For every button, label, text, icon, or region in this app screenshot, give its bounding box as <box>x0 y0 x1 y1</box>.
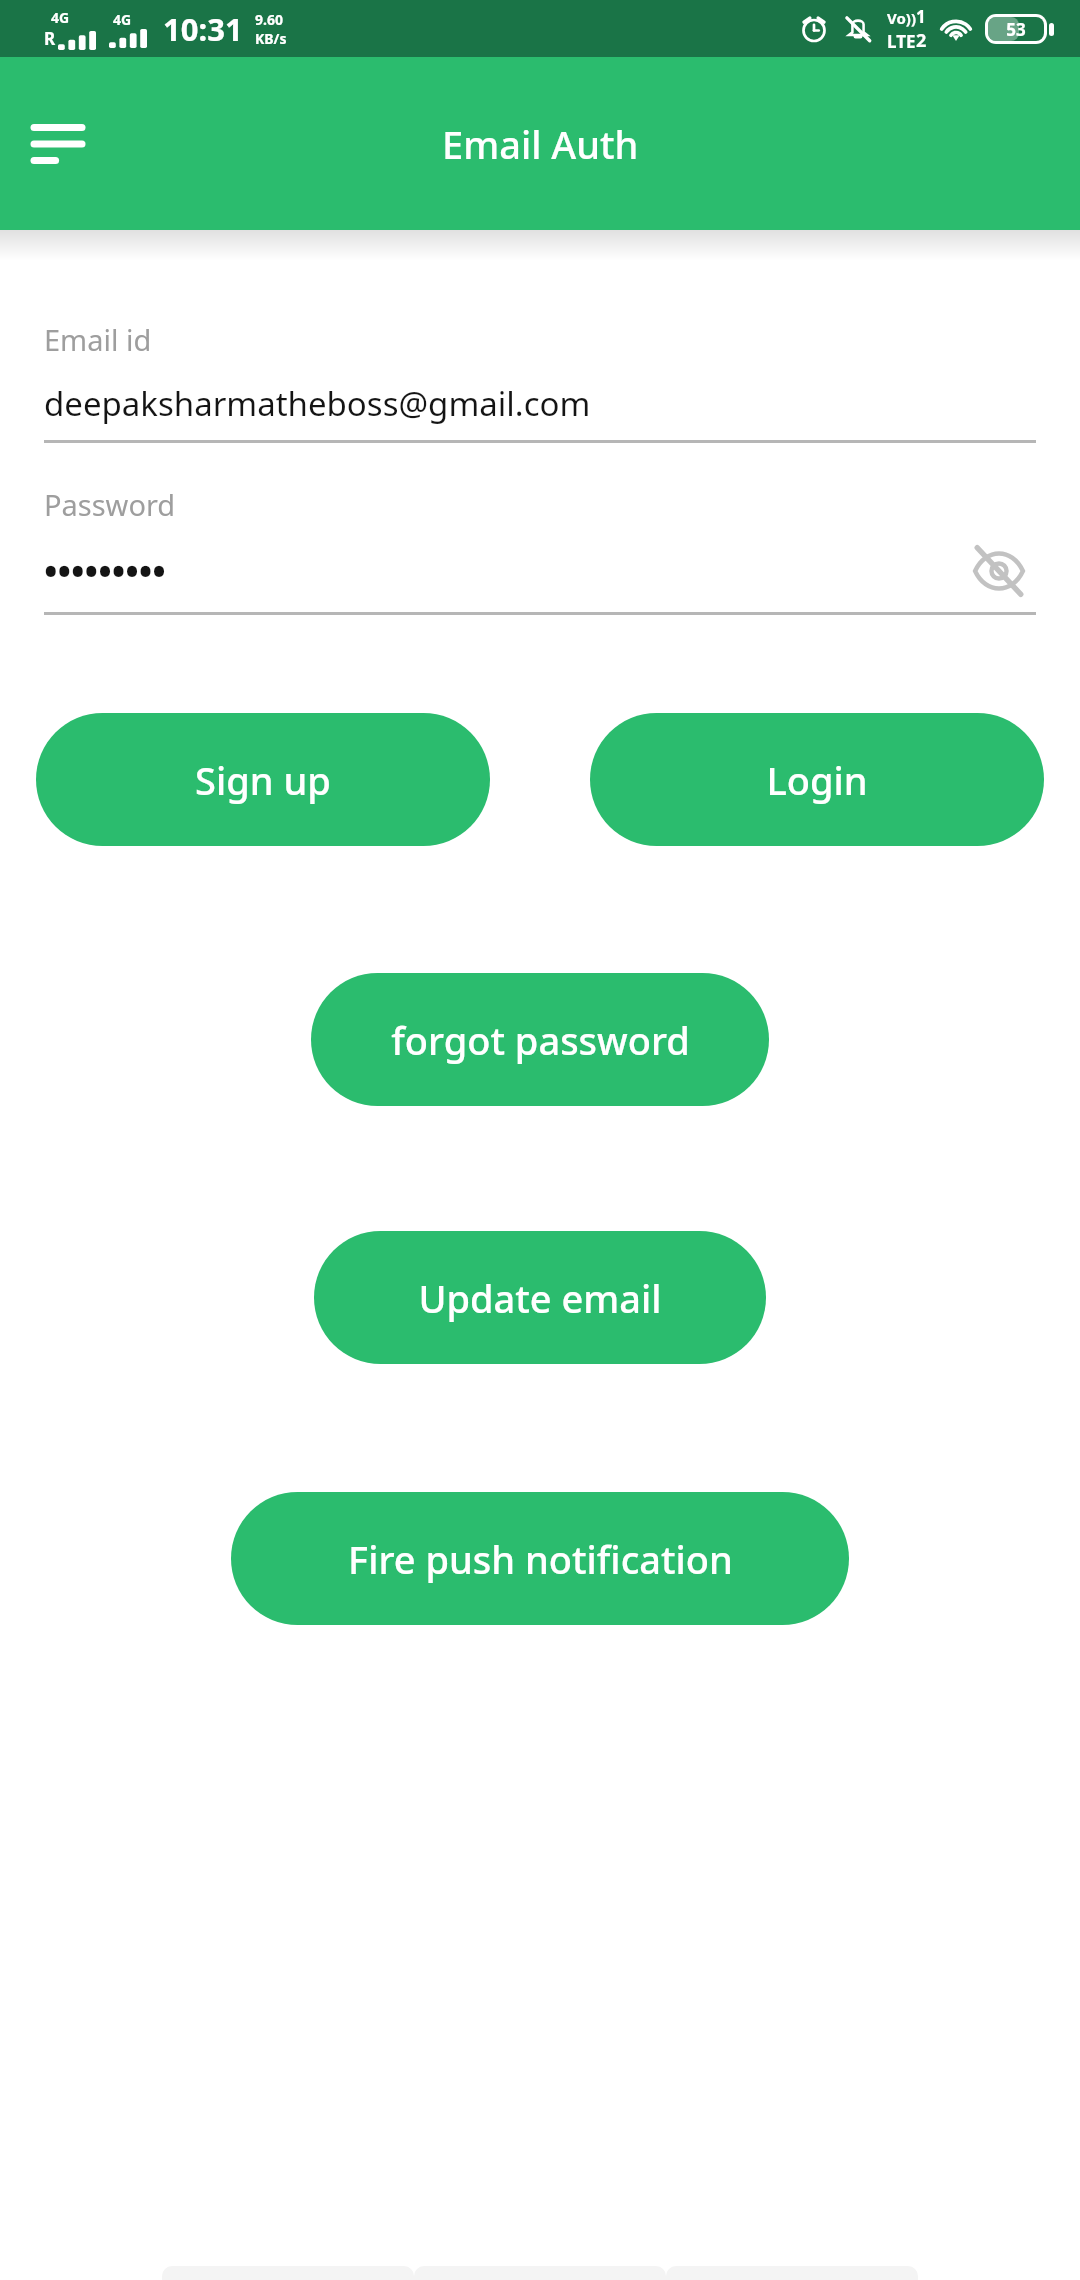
staticText: Sign up <box>195 754 331 806</box>
button[interactable]: Show password <box>962 534 1036 608</box>
staticText: 1 <box>916 5 926 28</box>
staticText: LTE <box>887 30 916 53</box>
button[interactable]: forgot password <box>311 973 769 1106</box>
staticText: 2 <box>916 28 927 53</box>
button[interactable]: Fire push notification <box>231 1492 849 1625</box>
staticText: R <box>44 27 56 50</box>
staticText: Vo)) <box>887 8 916 28</box>
button[interactable]: Sign up <box>36 713 490 846</box>
staticText: Fire push notification <box>348 1533 733 1585</box>
staticText: 10:31 <box>163 8 243 50</box>
staticText: deepaksharmatheboss@gmail.com <box>44 381 591 426</box>
staticText: Password <box>44 485 176 524</box>
staticText: Email Auth <box>442 118 639 170</box>
button[interactable]: Update email <box>314 1231 766 1364</box>
staticText: 4G <box>51 8 70 27</box>
staticText: forgot password <box>391 1014 690 1066</box>
button[interactable]: Open navigation menu <box>12 98 104 190</box>
staticText: Update email <box>418 1272 662 1324</box>
staticText: Login <box>766 754 868 806</box>
staticText: Email id <box>44 320 152 359</box>
staticText: 53 <box>988 18 1044 41</box>
staticText: 9.60 <box>255 10 283 29</box>
staticText: 4G <box>113 10 132 29</box>
staticText: ••••••••• <box>44 547 166 596</box>
button[interactable]: Login <box>590 713 1044 846</box>
staticText: KB/s <box>255 29 287 48</box>
